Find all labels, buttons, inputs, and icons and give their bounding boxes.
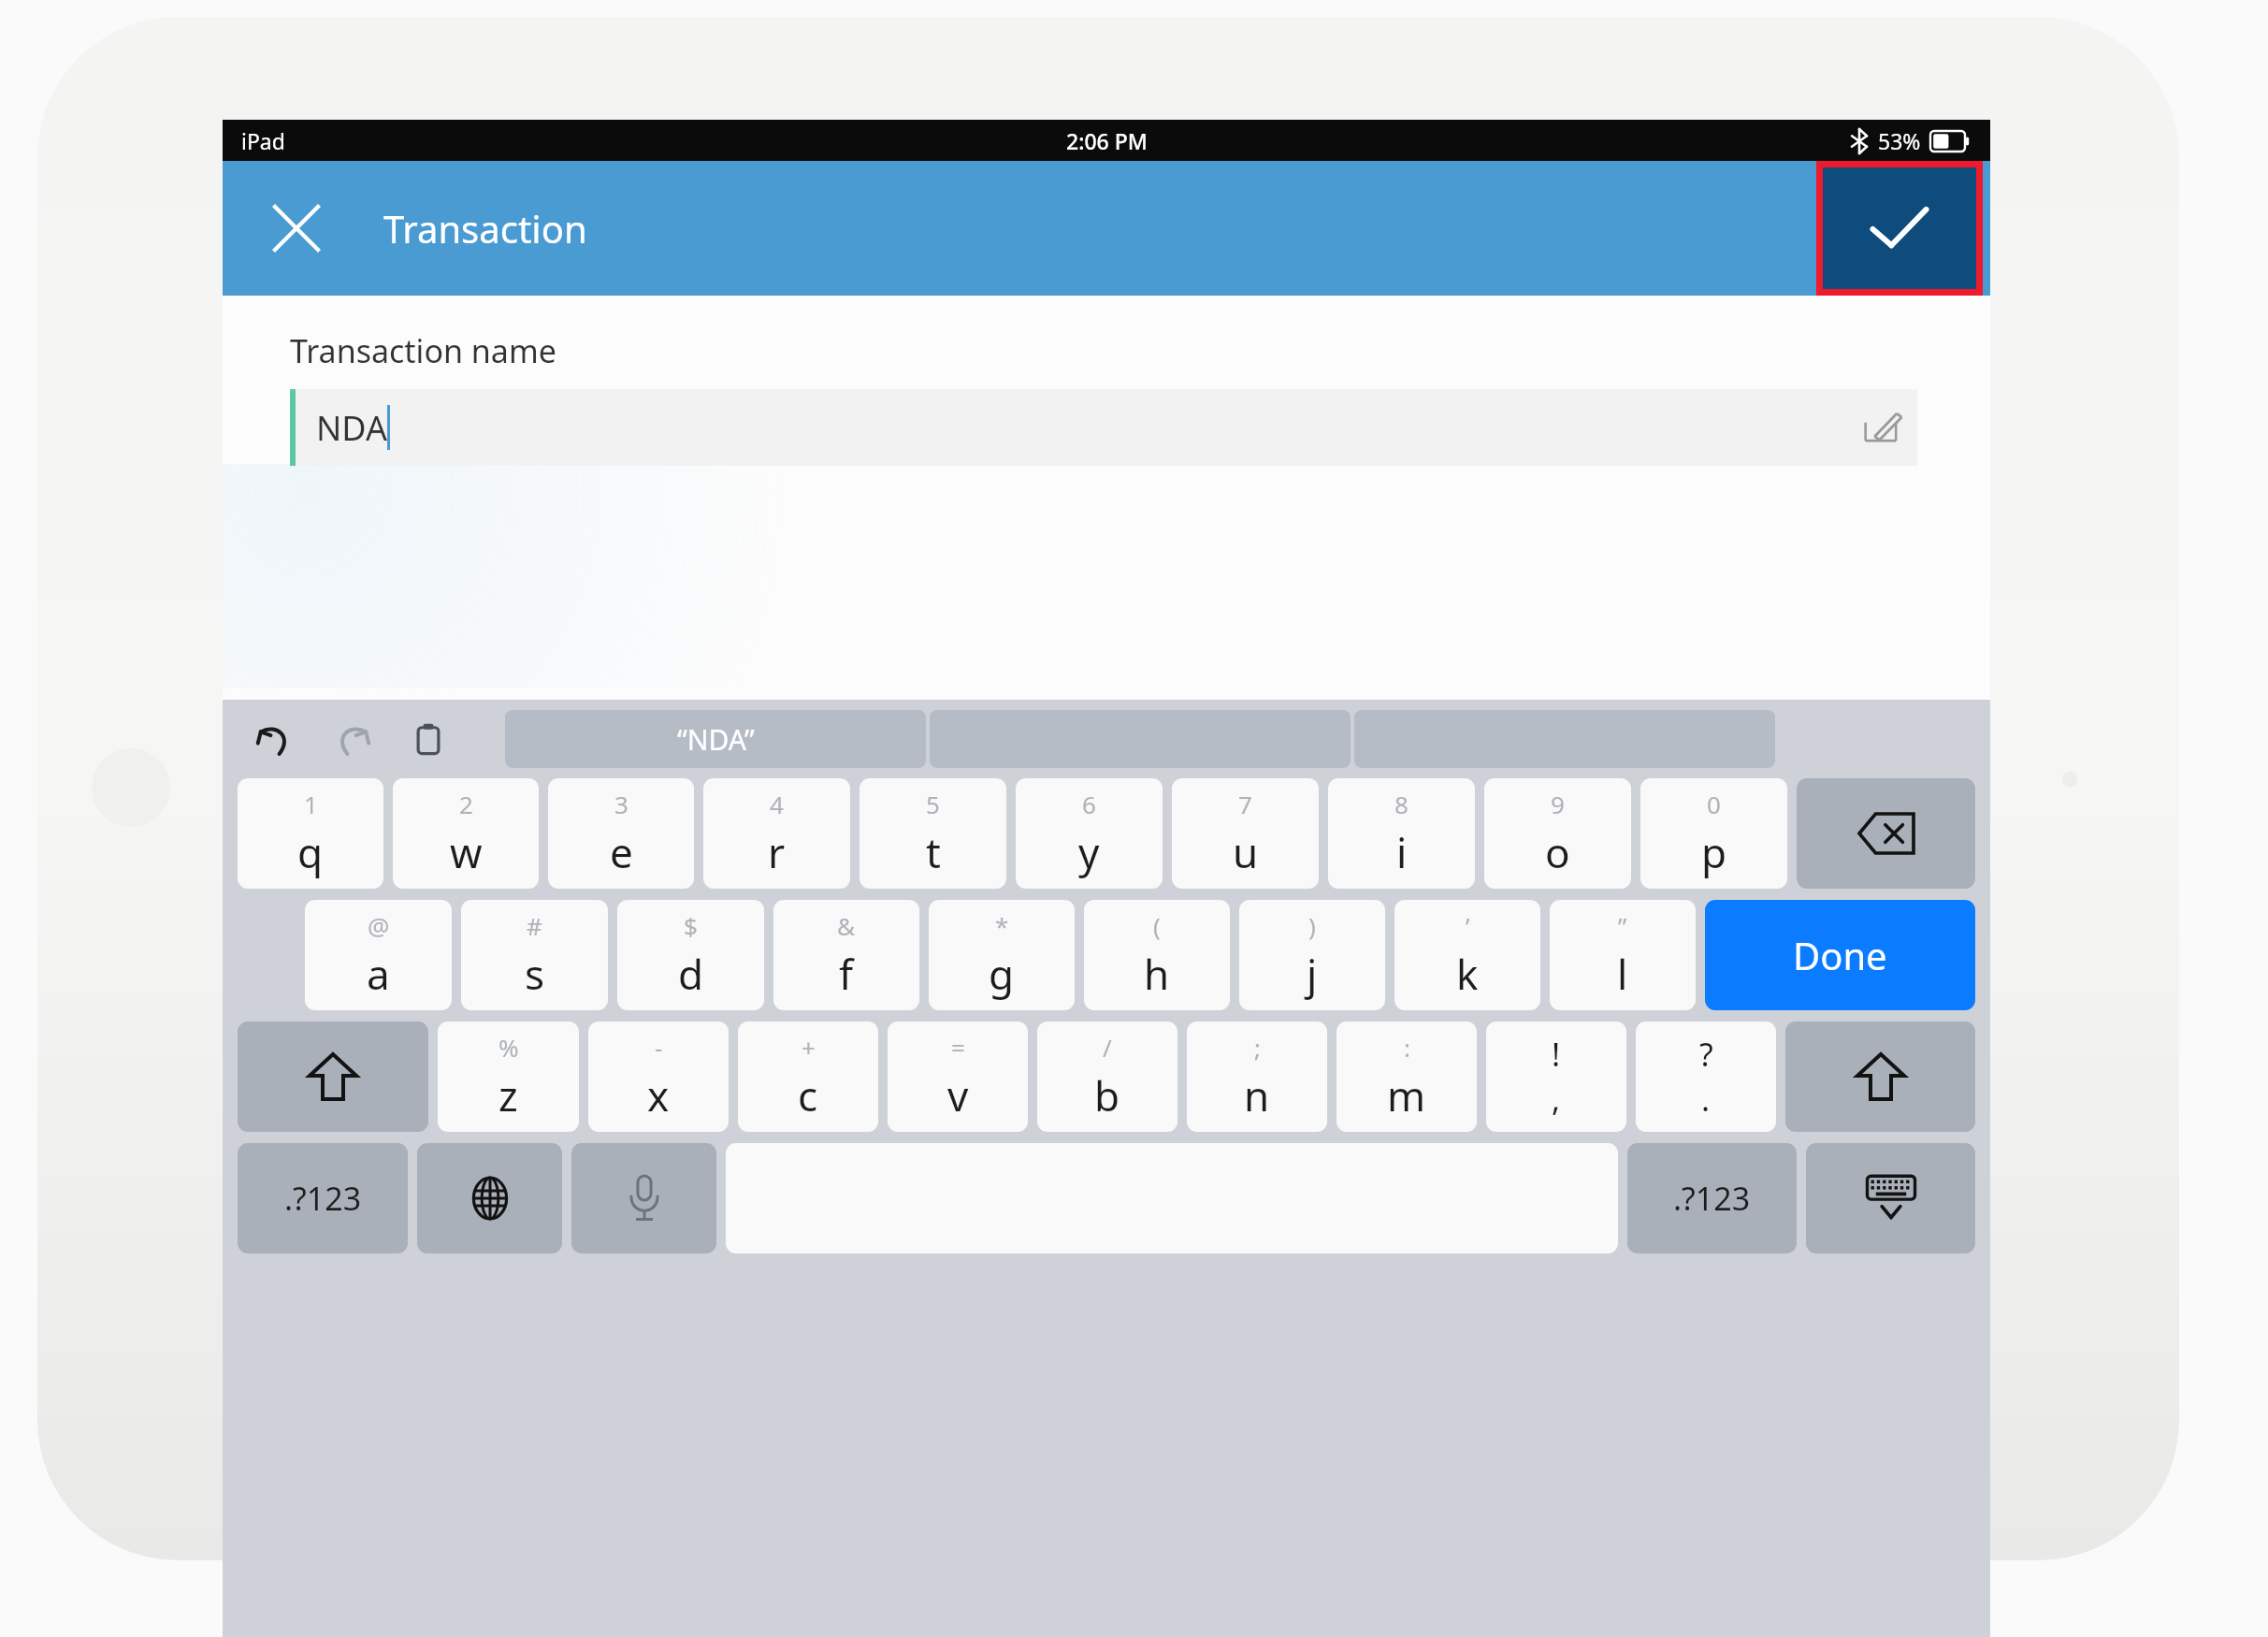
button[interactable]: 3 [548,778,694,889]
staticText: 0 [1707,788,1721,820]
staticText: = [951,1031,965,1064]
staticText: h [1144,946,1170,1002]
staticText: n [1244,1067,1270,1123]
button[interactable]: @ [305,900,452,1010]
button[interactable]: Shift [1785,1021,1975,1132]
staticText: , [1552,1078,1561,1121]
staticText: x [647,1067,670,1123]
staticText: @ [368,909,390,942]
staticText: : [1404,1031,1410,1064]
staticText: ; [1254,1031,1261,1064]
staticText: * [995,909,1009,942]
button[interactable]: & [773,900,919,1010]
button[interactable]: ” [1550,900,1696,1010]
button[interactable]: “NDA” [505,710,926,768]
button[interactable]: 4 [703,778,850,889]
staticText: / [1103,1031,1112,1064]
button[interactable]: - [588,1021,729,1132]
button[interactable]: Shift [238,1021,428,1132]
button[interactable]: 5 [860,778,1006,889]
staticText: 5 [926,788,940,820]
staticText: b [1094,1067,1120,1123]
staticText: y [1078,824,1100,880]
button[interactable]: ? [1636,1021,1776,1132]
staticText: % [498,1031,519,1064]
button[interactable]: ’ [1394,900,1540,1010]
button[interactable]: 9 [1484,778,1631,889]
staticText: & [837,909,856,942]
staticText: u [1233,824,1259,880]
button[interactable]: Done [1705,900,1975,1010]
staticText: .?123 [1673,1177,1751,1220]
staticText: s [525,946,545,1002]
staticText: 9 [1551,788,1565,820]
staticText: e [610,824,633,880]
staticText: ! [1552,1033,1561,1076]
button[interactable]: 8 [1328,778,1475,889]
button[interactable]: 1 [238,778,383,889]
button[interactable]: = [888,1021,1028,1132]
button[interactable]: NDA [290,389,1917,466]
button[interactable] [1797,778,1975,889]
staticText: d [678,946,704,1002]
button[interactable]: Undo [241,705,309,773]
button[interactable]: Paste [395,705,462,773]
staticText: w [450,824,483,880]
button[interactable]: .?123 [238,1143,408,1253]
staticText: z [498,1067,518,1123]
button[interactable]: / [1037,1021,1177,1132]
staticText: q [297,824,324,880]
staticText: ) [1308,909,1316,942]
staticText: ” [1618,909,1627,942]
staticText: a [367,946,390,1002]
staticText: m [1387,1067,1426,1123]
button[interactable]: : [1336,1021,1477,1132]
button[interactable]: $ [617,900,764,1010]
staticText: v [947,1067,969,1123]
staticText: - [655,1031,663,1064]
staticText: 7 [1238,788,1252,820]
button[interactable]: 6 [1016,778,1163,889]
button[interactable]: .?123 [1627,1143,1797,1253]
staticText: i [1396,824,1408,880]
staticText: 3 [614,788,628,820]
button[interactable]: Edit [1850,394,1917,461]
button[interactable]: Change keyboard language [417,1143,562,1253]
button[interactable]: ! [1486,1021,1626,1132]
staticText: g [989,946,1015,1002]
button[interactable]: 7 [1172,778,1319,889]
button[interactable]: * [929,900,1075,1010]
staticText: + [802,1031,816,1064]
staticText: k [1456,946,1479,1002]
staticText: 8 [1394,788,1408,820]
button[interactable]: 0 [1640,778,1787,889]
staticText: $ [684,909,698,942]
button[interactable]: ) [1239,900,1385,1010]
button[interactable]: 2 [393,778,539,889]
staticText: r [768,824,786,880]
staticText: . [1701,1078,1711,1121]
button[interactable]: ; [1187,1021,1327,1132]
staticText: f [839,946,854,1002]
button[interactable]: % [438,1021,579,1132]
button[interactable]: Confirm [1823,167,1976,289]
button[interactable]: Space [726,1143,1618,1253]
button[interactable]: Dictation [571,1143,716,1253]
staticText: Transaction name [290,329,556,372]
staticText: “NDA” [677,720,755,759]
staticText: # [527,909,542,942]
staticText: t [926,824,941,880]
staticText: Transaction [383,203,587,254]
button[interactable]: # [461,900,608,1010]
staticText: 2 [459,788,473,820]
button[interactable]: ( [1084,900,1230,1010]
staticText: ? [1699,1033,1713,1076]
button[interactable]: Hide keyboard [1806,1143,1975,1253]
button[interactable]: Redo [318,705,385,773]
staticText: c [798,1067,818,1123]
button[interactable]: Close [256,188,337,268]
staticText: NDA [316,405,387,451]
button[interactable]: + [738,1021,878,1132]
